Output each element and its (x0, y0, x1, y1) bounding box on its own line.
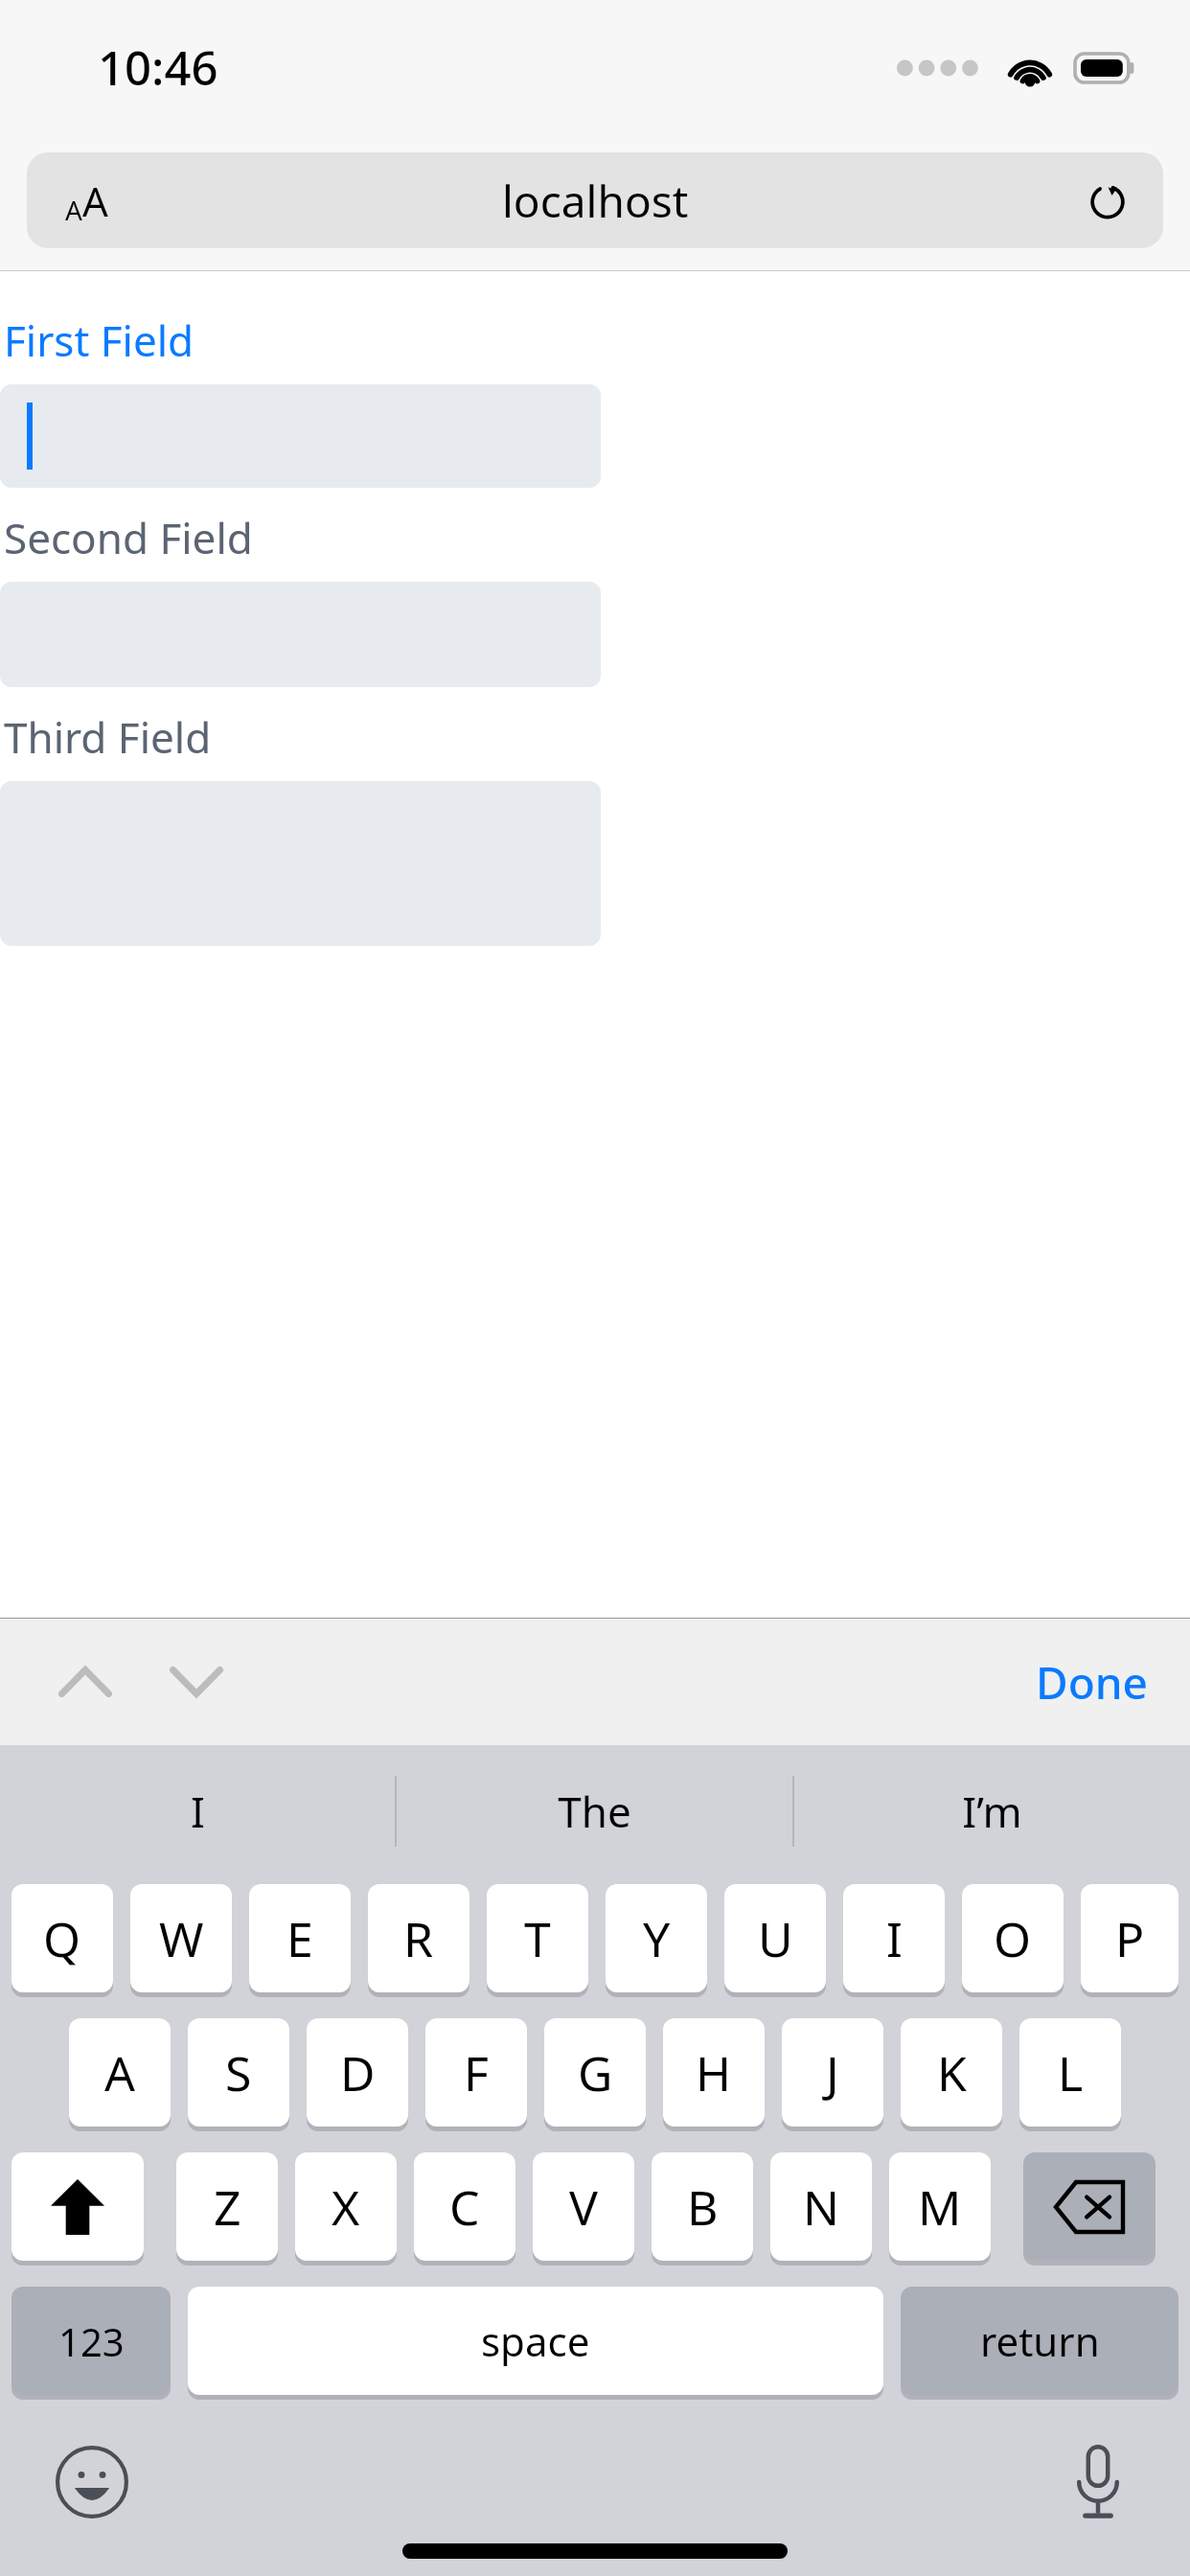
staticText: 123 (58, 2315, 125, 2367)
staticText: T (524, 1906, 551, 1971)
button[interactable]: Previous field (42, 1639, 128, 1725)
button[interactable]: Done (1013, 1639, 1171, 1726)
staticText: E (286, 1906, 313, 1971)
button[interactable]: Text size (27, 152, 1163, 248)
button[interactable]: I (843, 1884, 945, 1997)
staticText: D (340, 2040, 376, 2105)
button[interactable]: N (770, 2152, 872, 2265)
staticText: O (994, 1906, 1032, 1971)
button[interactable]: Y (606, 1884, 707, 1997)
staticText: W (159, 1906, 204, 1971)
button[interactable]: G (544, 2018, 646, 2131)
button[interactable]: J (782, 2018, 883, 2131)
button[interactable]: Q (11, 1884, 113, 1997)
button[interactable]: Z (176, 2152, 278, 2265)
button[interactable]: K (901, 2018, 1002, 2131)
staticText: I (886, 1906, 903, 1971)
staticText: A (65, 192, 82, 228)
button[interactable]: X (295, 2152, 397, 2265)
staticText: S (225, 2040, 252, 2105)
button[interactable]: Dictation (1052, 2436, 1144, 2528)
button[interactable]: I’m (794, 1745, 1190, 1877)
button[interactable]: P (1081, 1884, 1179, 1997)
staticText: I’m (962, 1782, 1022, 1840)
staticText: Third Field (4, 708, 212, 766)
staticText: localhost (502, 171, 689, 231)
staticText: I (191, 1782, 205, 1840)
staticText: Second Field (4, 509, 253, 566)
button[interactable]: 123 (11, 2287, 171, 2400)
button[interactable]: E (249, 1884, 351, 1997)
button[interactable]: C (414, 2152, 515, 2265)
staticText: 10:46 (98, 35, 218, 100)
button[interactable]: D (307, 2018, 408, 2131)
button[interactable]: A (69, 2018, 171, 2131)
staticText: X (332, 2174, 360, 2240)
staticText: K (937, 2040, 967, 2105)
button[interactable]: V (533, 2152, 634, 2265)
button[interactable]: L (1019, 2018, 1121, 2131)
staticText: First Field (4, 311, 195, 369)
staticText: C (449, 2174, 480, 2240)
button[interactable]: H (663, 2018, 765, 2131)
button[interactable]: space (188, 2287, 883, 2400)
button[interactable]: O (962, 1884, 1064, 1997)
staticText: V (569, 2174, 598, 2240)
staticText: Q (43, 1906, 81, 1971)
staticText: U (758, 1906, 793, 1971)
staticText: N (803, 2174, 839, 2240)
button[interactable]: T (487, 1884, 588, 1997)
button[interactable]: Shift (11, 2152, 144, 2265)
button[interactable]: F (425, 2018, 527, 2131)
button[interactable]: return (901, 2287, 1179, 2400)
button[interactable]: S (188, 2018, 289, 2131)
staticText: J (826, 2040, 839, 2105)
staticText: B (687, 2174, 719, 2240)
staticText: L (1058, 2040, 1084, 2105)
button[interactable]: M (889, 2152, 991, 2265)
staticText: Y (643, 1906, 671, 1971)
button[interactable]: Backspace (1023, 2152, 1156, 2265)
staticText: return (980, 2313, 1100, 2368)
staticText: A (82, 173, 108, 228)
staticText: P (1115, 1906, 1145, 1971)
button[interactable]: Emoji (46, 2436, 138, 2528)
button[interactable]: Text size (65, 173, 108, 228)
button[interactable]: Next field (153, 1639, 240, 1725)
button[interactable]: B (652, 2152, 753, 2265)
staticText: R (403, 1906, 434, 1971)
button[interactable]: R (368, 1884, 469, 1997)
button[interactable]: W (130, 1884, 232, 1997)
button[interactable]: U (724, 1884, 826, 1997)
button[interactable] (0, 384, 601, 488)
staticText: F (464, 2040, 489, 2105)
staticText: space (481, 2313, 590, 2368)
staticText: A (104, 2040, 135, 2105)
staticText: Done (1036, 1652, 1148, 1713)
staticText: Z (214, 2174, 241, 2240)
staticText: G (578, 2040, 613, 2105)
button[interactable]: I (0, 1745, 395, 1877)
staticText: The (558, 1782, 631, 1840)
button[interactable]: The (397, 1745, 792, 1877)
staticText: M (918, 2174, 962, 2240)
button[interactable]: Reload (1079, 172, 1136, 229)
staticText: H (696, 2040, 732, 2105)
